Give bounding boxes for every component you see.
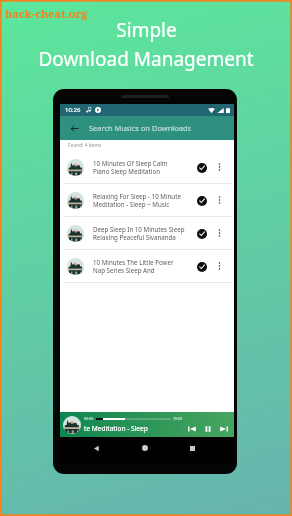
staticText: te Meditation - Sleep bbox=[84, 424, 148, 433]
button[interactable]: More options bbox=[213, 227, 225, 239]
button[interactable]: Downloaded bbox=[195, 260, 208, 273]
staticText: Search Musics on Downloads bbox=[89, 123, 192, 133]
staticText: Relaxing Peaceful Sivananda bbox=[93, 233, 176, 241]
button[interactable]: 10 Minutes The Little Power bbox=[60, 250, 234, 283]
staticText: Found: 4 items bbox=[68, 142, 102, 149]
staticText: Deep Sleep In 10 Minutes Sleep bbox=[93, 225, 185, 233]
button[interactable]: Home bbox=[137, 440, 153, 456]
staticText: 10:26 bbox=[65, 106, 81, 114]
staticText: Piano Sleep Meditation bbox=[93, 167, 160, 175]
staticText: 00:06 bbox=[84, 416, 94, 421]
staticText: 10:05 bbox=[173, 416, 183, 421]
button[interactable]: 10 Minutes Of Sleep Calm bbox=[60, 151, 234, 184]
staticText: 10 Minutes Of Sleep Calm bbox=[93, 159, 168, 167]
button[interactable]: Deep Sleep In 10 Minutes Sleep bbox=[60, 217, 234, 250]
staticText: Meditation - Sleep ~ Music bbox=[93, 200, 170, 208]
button[interactable]: Back bbox=[67, 121, 81, 135]
staticText: hack-cheat.org bbox=[5, 6, 88, 21]
staticText: Simple bbox=[116, 17, 177, 43]
button[interactable]: Downloaded bbox=[195, 227, 208, 240]
staticText: Relaxing For Sleep - 10 Minute bbox=[93, 192, 181, 200]
button[interactable]: Downloaded bbox=[195, 161, 208, 174]
button[interactable]: Recents bbox=[184, 440, 200, 456]
button[interactable]: Back bbox=[88, 440, 104, 456]
button[interactable]: Relaxing For Sleep - 10 Minute bbox=[60, 184, 234, 217]
staticText: 10 Minutes The Little Power bbox=[93, 258, 174, 266]
button[interactable]: Next bbox=[217, 422, 231, 436]
button[interactable]: More options bbox=[213, 260, 225, 272]
button[interactable]: Previous bbox=[185, 422, 199, 436]
staticText: Nap Series Sleep And bbox=[93, 266, 155, 274]
button[interactable]: Downloaded bbox=[195, 194, 208, 207]
button[interactable]: More options bbox=[213, 194, 225, 206]
button[interactable]: More options bbox=[213, 161, 225, 173]
staticText: Download Management bbox=[38, 46, 254, 72]
button[interactable]: Pause bbox=[201, 422, 215, 436]
